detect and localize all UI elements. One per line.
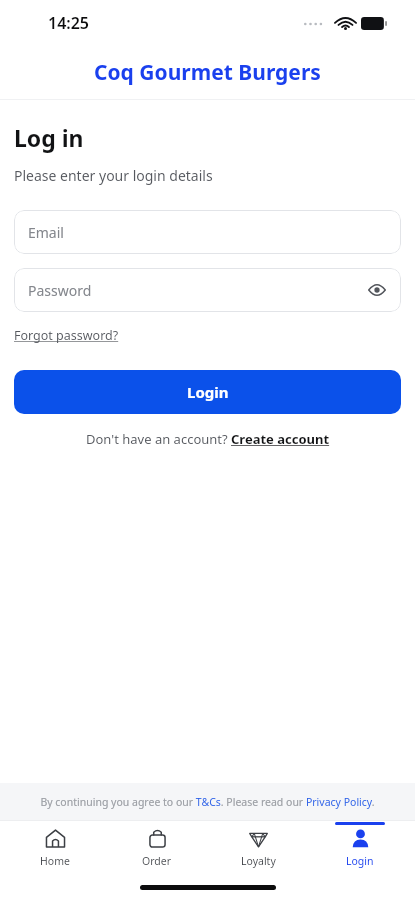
button[interactable]: Home — [8, 821, 102, 874]
staticText: Forgot password? — [14, 327, 119, 344]
staticText: By continuing you agree to our T&Cs. Ple… — [14, 795, 401, 809]
staticText: Login — [346, 854, 374, 868]
button[interactable]: Login — [313, 821, 407, 874]
staticText: Home — [40, 854, 70, 868]
button[interactable]: Forgot password? — [14, 325, 119, 346]
button[interactable]: Password — [14, 268, 401, 312]
button[interactable]: Email — [14, 210, 401, 254]
staticText: Log in — [14, 122, 84, 153]
button[interactable]: Don't have an account? Create account — [86, 430, 330, 448]
staticText: 14:25 — [48, 12, 90, 34]
staticText: Order — [142, 854, 172, 868]
staticText: Password — [28, 281, 92, 300]
staticText: Please enter your login details — [14, 166, 213, 185]
staticText: Coq Gourmet Burgers — [94, 58, 321, 87]
button[interactable]: Loyalty — [211, 821, 305, 874]
staticText: Loyalty — [241, 854, 276, 868]
button[interactable]: Show password — [365, 278, 389, 302]
staticText: Email — [28, 223, 64, 242]
staticText: Don't have an account? Create account — [86, 430, 330, 448]
button[interactable]: Login — [14, 370, 401, 414]
button[interactable]: Order — [110, 821, 204, 874]
staticText: Login — [187, 382, 229, 402]
